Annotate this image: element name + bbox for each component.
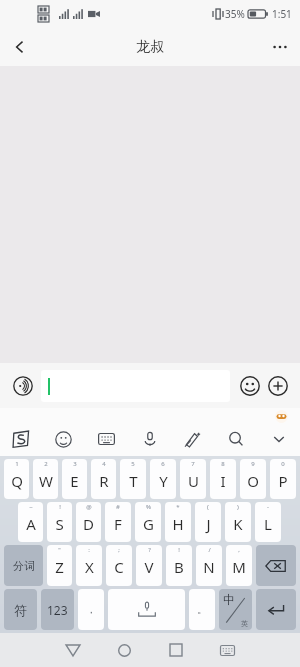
staticText: ! (59, 503, 61, 511)
staticText: 35% (225, 7, 245, 21)
button[interactable]: Handwriting (171, 422, 214, 456)
button[interactable]: 6 (150, 459, 176, 499)
staticText: 5 (131, 460, 135, 468)
staticText: / (208, 546, 211, 554)
button[interactable]: * (165, 502, 191, 542)
button[interactable]: , (226, 545, 252, 586)
button[interactable]: Home (107, 633, 141, 667)
button[interactable]: 1 (4, 459, 29, 499)
staticText: 英 (241, 619, 248, 628)
button[interactable]: Enter (256, 589, 296, 630)
staticText: 123 (47, 602, 68, 618)
staticText: U (188, 471, 199, 491)
staticText: I (220, 471, 226, 491)
button[interactable]: 符 (4, 589, 37, 630)
button[interactable]: 3 (62, 459, 87, 499)
button[interactable]: 分词 (4, 545, 43, 586)
staticText: 9 (251, 460, 255, 468)
button[interactable]: 4 (91, 459, 116, 499)
button[interactable]: Emoji (236, 372, 264, 400)
button[interactable]: - (255, 502, 281, 542)
button[interactable]: Emoji panel (42, 422, 85, 456)
staticText: ~ (29, 503, 33, 511)
staticText: Q (11, 471, 23, 491)
staticText: W (39, 471, 53, 491)
button[interactable]: : (76, 545, 102, 586)
button[interactable]: Voice input (8, 371, 38, 401)
button[interactable]: 2 (33, 459, 58, 499)
staticText: F (114, 514, 122, 534)
button[interactable]: More functions (264, 372, 292, 400)
staticText: 符 (14, 602, 27, 618)
button[interactable]: ; (106, 545, 132, 586)
staticText: - (267, 503, 269, 511)
button[interactable]: Back (56, 633, 90, 667)
staticText: X (85, 557, 94, 577)
button[interactable]: Sogou input (0, 422, 42, 456)
staticText: 1 (15, 460, 19, 468)
button[interactable]: Recents (159, 633, 193, 667)
staticText: 龙叔 (136, 38, 164, 56)
staticText: S (55, 514, 64, 534)
staticText: V (144, 557, 154, 577)
button[interactable]: / (196, 545, 222, 586)
staticText: : (88, 546, 90, 554)
button[interactable]: ) (225, 502, 251, 542)
staticText: ; (118, 546, 120, 554)
button[interactable] (41, 370, 230, 402)
staticText: R (99, 471, 109, 491)
staticText: A (26, 514, 36, 534)
button[interactable]: ( (195, 502, 221, 542)
staticText: Z (55, 557, 64, 577)
staticText: 分词 (13, 559, 35, 573)
staticText: 。 (197, 603, 207, 616)
button[interactable]: Keyboard settings (85, 422, 128, 456)
staticText: E (70, 471, 79, 491)
staticText: @ (86, 503, 92, 511)
button[interactable]: 5 (120, 459, 146, 499)
button[interactable]: ? (136, 545, 162, 586)
staticText: ， (86, 603, 96, 616)
staticText: 4 (102, 460, 106, 468)
staticText: 中 (223, 592, 235, 607)
button[interactable]: # (105, 502, 131, 542)
staticText: K (233, 514, 243, 534)
button[interactable]: % (135, 502, 161, 542)
button[interactable]: @ (76, 502, 101, 542)
button[interactable]: ! (166, 545, 192, 586)
staticText: H (172, 514, 184, 534)
button[interactable]: Chinese English toggle (219, 589, 252, 630)
button[interactable]: 123 (41, 589, 74, 630)
button[interactable]: Search (214, 422, 257, 456)
staticText: 7 (191, 460, 195, 468)
button[interactable]: ~ (18, 502, 43, 542)
button[interactable]: 0 (270, 459, 296, 499)
button[interactable]: Collapse toolbar (257, 422, 300, 456)
staticText: % (146, 503, 151, 511)
button[interactable]: Hide keyboard (210, 633, 244, 667)
staticText: M (232, 557, 246, 577)
staticText: C (114, 557, 124, 577)
button[interactable]: " (47, 545, 72, 586)
staticText: D (83, 514, 94, 534)
button[interactable]: ， (78, 589, 104, 630)
button[interactable]: Backspace (256, 545, 296, 586)
staticText: , (238, 546, 240, 554)
staticText: ) (237, 503, 239, 511)
staticText: * (176, 503, 180, 511)
staticText: 2 (44, 460, 48, 468)
staticText: P (278, 471, 288, 491)
button[interactable]: 9 (240, 459, 266, 499)
staticText: O (247, 471, 259, 491)
button[interactable]: Voice (128, 422, 171, 456)
button[interactable]: Back (0, 28, 40, 66)
button[interactable]: ! (47, 502, 72, 542)
button[interactable]: 。 (189, 589, 215, 630)
button[interactable]: 8 (210, 459, 236, 499)
button[interactable]: Space (108, 589, 185, 630)
button[interactable]: More options (260, 28, 300, 66)
staticText: T (129, 471, 138, 491)
staticText: 8 (221, 460, 225, 468)
staticText: B (174, 557, 184, 577)
button[interactable]: 7 (180, 459, 206, 499)
